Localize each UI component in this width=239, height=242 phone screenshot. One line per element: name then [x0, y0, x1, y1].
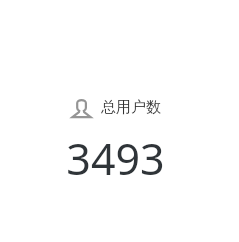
staticText: 3493	[0, 129, 235, 188]
button[interactable]: Total users	[68, 97, 163, 122]
staticText: 总用户数	[101, 98, 161, 117]
other: Total users	[70, 99, 92, 120]
